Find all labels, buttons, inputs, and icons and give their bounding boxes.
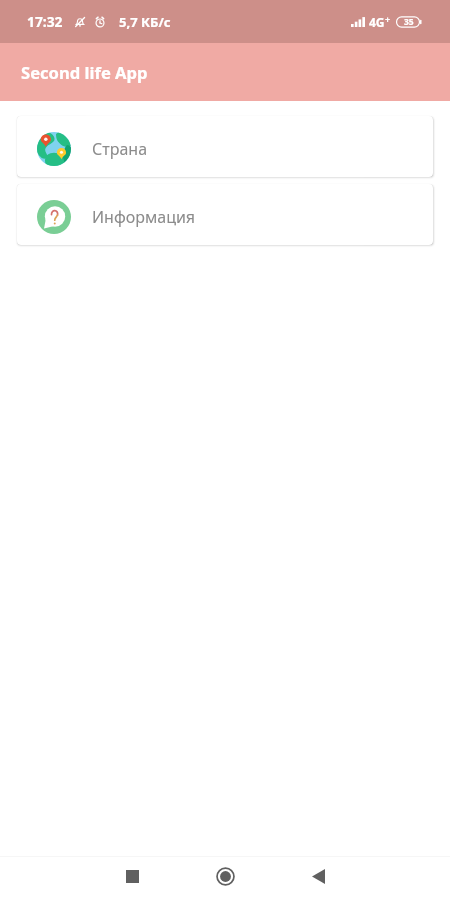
- staticText: Second life App: [21, 61, 148, 84]
- staticText: 17:32: [27, 12, 63, 31]
- button[interactable]: Информация: [17, 184, 433, 245]
- button[interactable]: Recents: [86, 856, 179, 897]
- staticText: Страна: [92, 138, 148, 160]
- staticText: 4G: [369, 14, 385, 30]
- staticText: +: [385, 13, 391, 25]
- staticText: Информация: [92, 206, 196, 228]
- button[interactable]: Home: [179, 856, 272, 897]
- button[interactable]: Страна: [17, 116, 433, 177]
- staticText: 35: [404, 16, 414, 28]
- button[interactable]: Back: [272, 856, 365, 897]
- staticText: 5,7 КБ/с: [119, 13, 171, 31]
